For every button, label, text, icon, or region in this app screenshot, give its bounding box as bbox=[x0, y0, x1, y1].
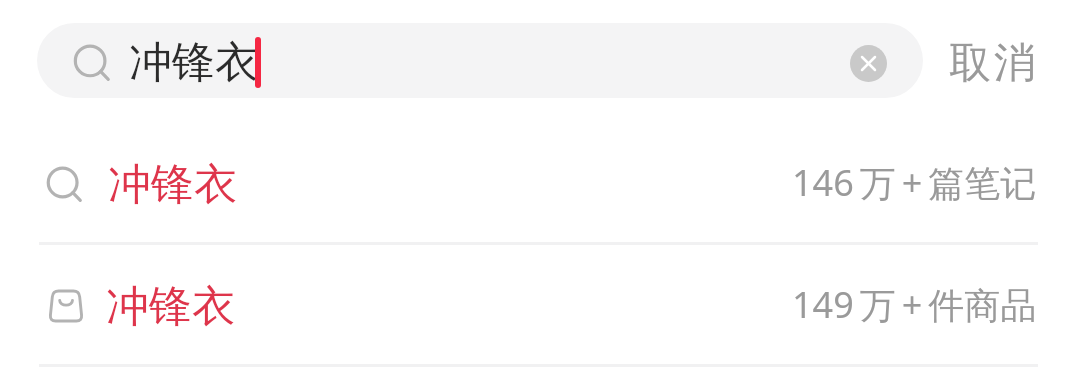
staticText: 冲锋衣 bbox=[129, 36, 258, 90]
button[interactable]: 冲锋衣 bbox=[37, 23, 923, 98]
staticText: 149 万 + 件商品 bbox=[792, 280, 1037, 329]
button[interactable]: 取消 bbox=[923, 0, 1080, 122]
button[interactable]: Clear search text bbox=[840, 35, 896, 91]
staticText: 冲锋衣 bbox=[106, 280, 235, 334]
staticText: 冲锋衣 bbox=[108, 158, 237, 212]
button[interactable]: 冲锋衣 bbox=[0, 122, 1080, 244]
staticText: 取消 bbox=[948, 37, 1037, 90]
staticText: 146 万 + 篇笔记 bbox=[792, 158, 1037, 207]
button[interactable]: 冲锋衣 bbox=[0, 244, 1080, 366]
